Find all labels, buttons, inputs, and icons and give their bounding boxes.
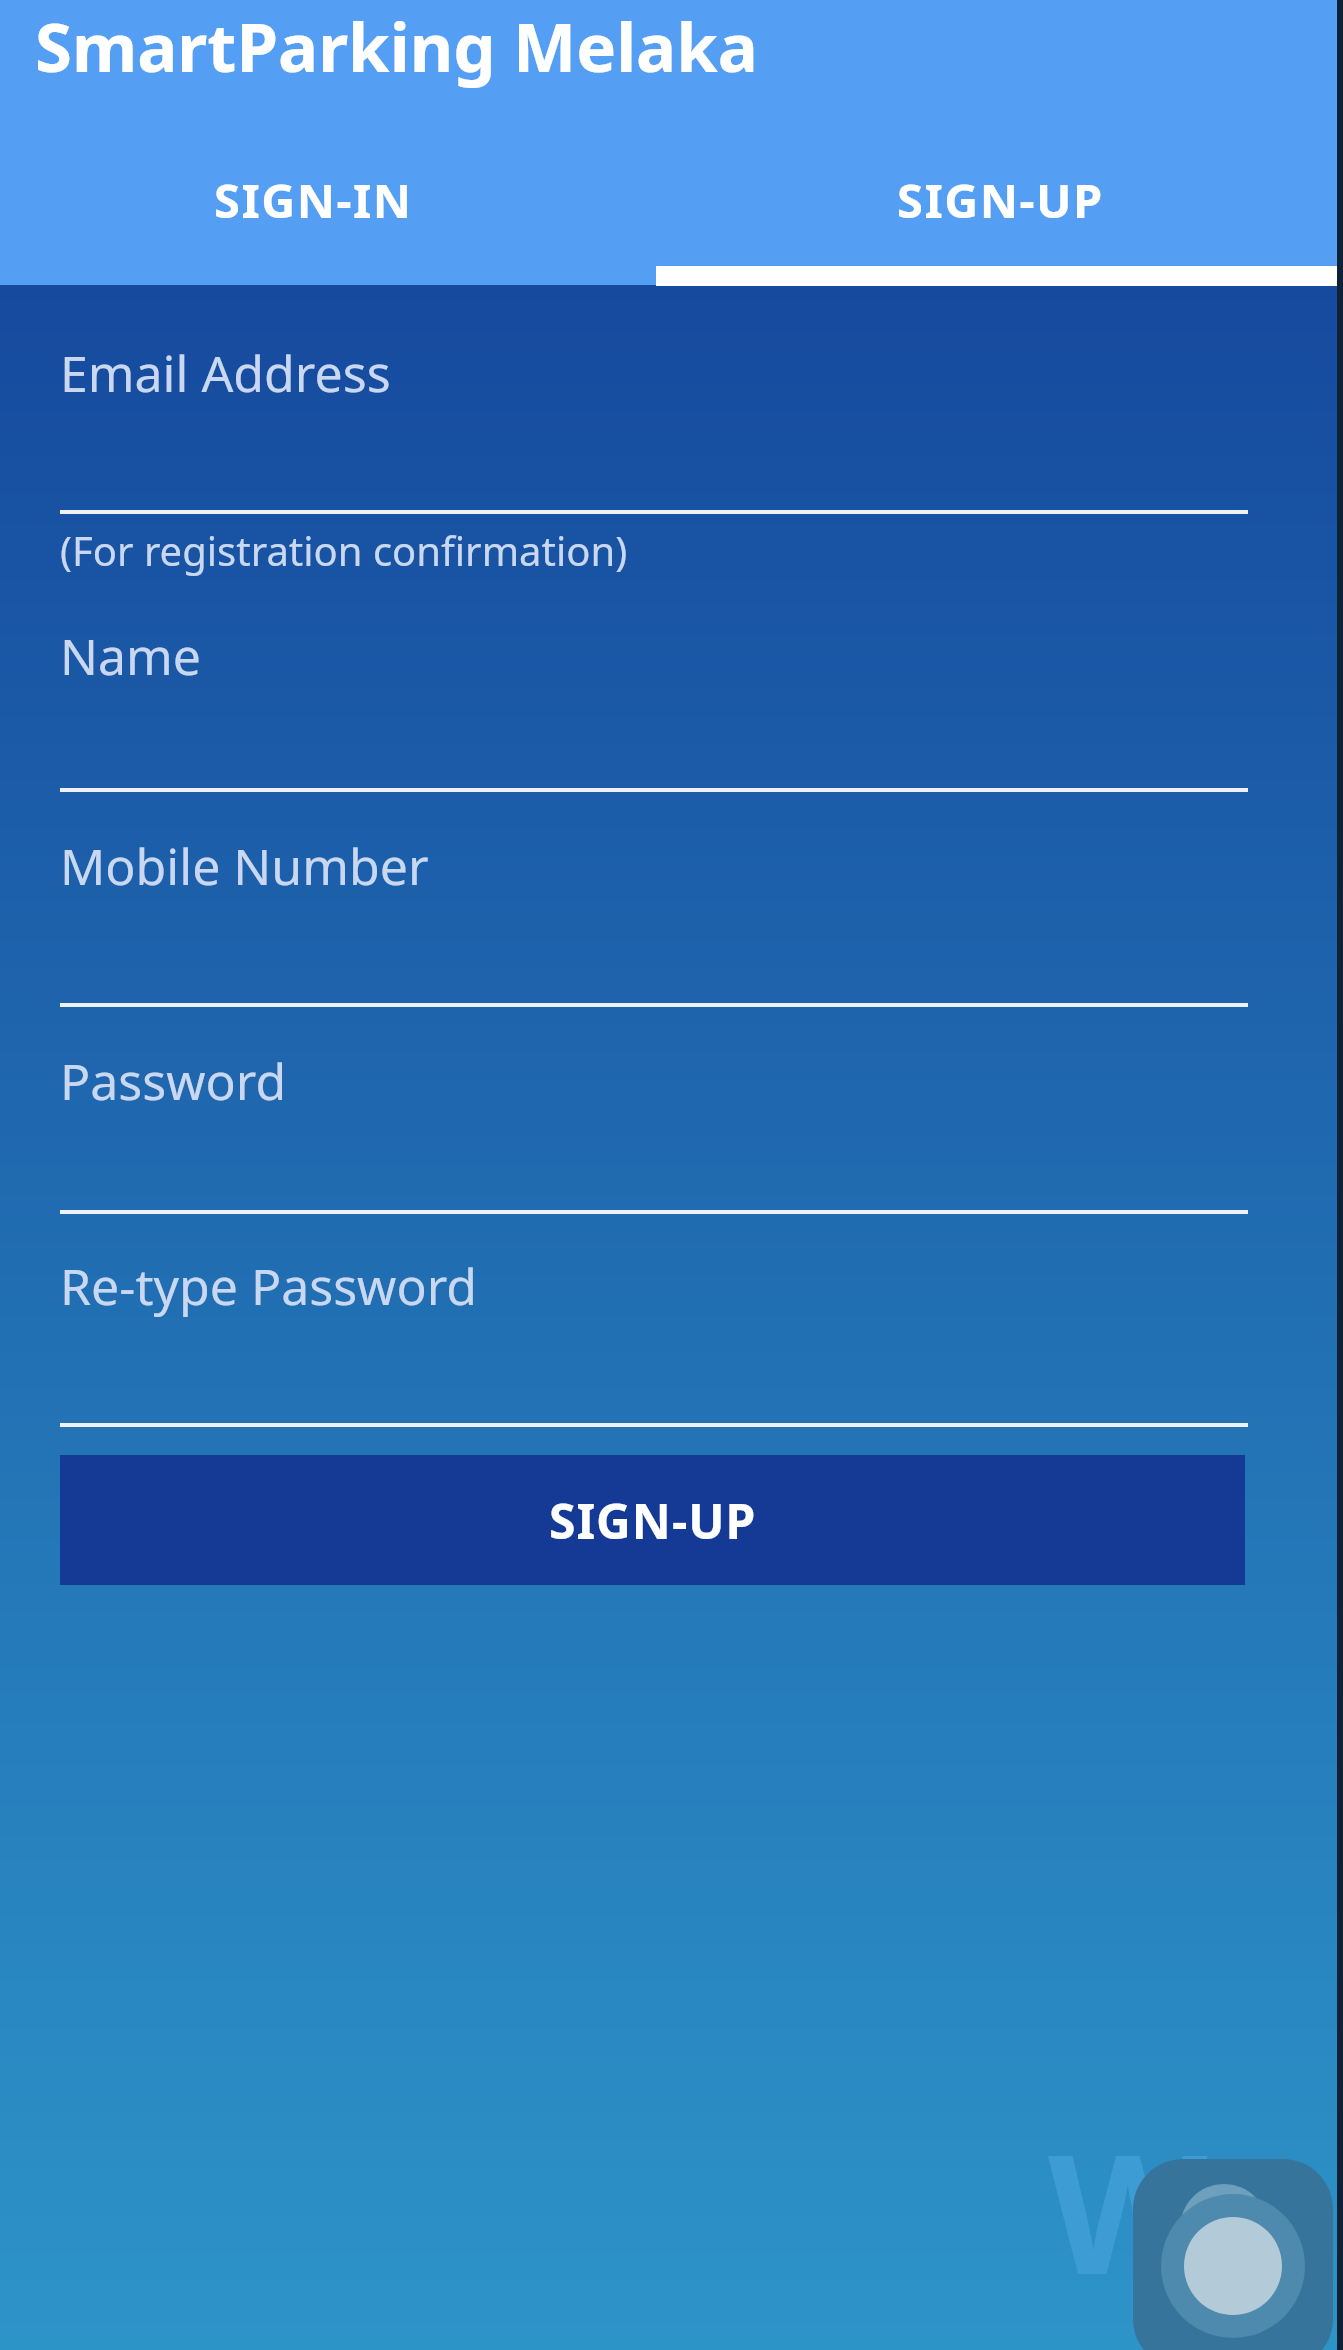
- staticText: SIGN-UP: [549, 1488, 757, 1553]
- staticText: Mobile Number: [60, 832, 429, 900]
- staticText: Name: [60, 622, 201, 690]
- button[interactable]: SIGN-UP: [60, 1455, 1245, 1585]
- staticText: SIGN-UP: [897, 168, 1104, 232]
- staticText: SIGN-IN: [214, 168, 413, 232]
- button[interactable]: SIGN-UP: [671, 155, 1343, 285]
- staticText: SmartParking Melaka: [35, 0, 758, 91]
- button[interactable]: Name: [60, 622, 1248, 792]
- button[interactable]: Mobile Number: [60, 832, 1248, 1007]
- button[interactable]: SIGN-IN: [0, 155, 671, 285]
- button[interactable]: Re-type Password: [60, 1252, 1248, 1427]
- button[interactable]: Email Address: [60, 339, 1248, 514]
- staticText: W: [1048, 2098, 1208, 2323]
- staticText: Email Address: [60, 339, 391, 407]
- staticText: Re-type Password: [60, 1252, 478, 1320]
- staticText: (For registration confirmation): [60, 523, 628, 577]
- button[interactable]: Password: [60, 1047, 1248, 1214]
- staticText: Password: [60, 1047, 287, 1115]
